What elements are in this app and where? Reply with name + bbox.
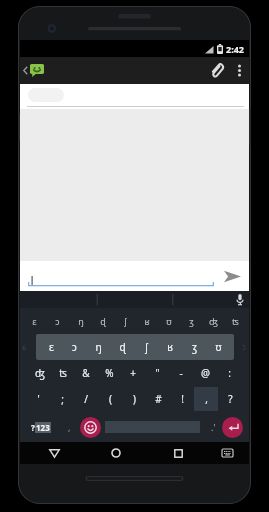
staticText: : — [228, 366, 231, 380]
button[interactable]: ? — [24, 412, 58, 442]
staticText: 123 — [36, 422, 50, 433]
staticText: ) — [133, 392, 136, 406]
staticText: ɔ — [55, 315, 60, 327]
staticText: ʒ — [192, 340, 197, 354]
button[interactable]: ɛ — [40, 334, 63, 360]
button[interactable]: # — [146, 386, 170, 412]
staticText: ʃ — [145, 340, 148, 354]
button[interactable]: Recipient — [28, 88, 64, 102]
staticText: ʁ — [144, 315, 150, 327]
button[interactable]: ŋ — [86, 334, 110, 360]
button[interactable]: Recent apps — [167, 442, 189, 464]
staticText: ɔ — [242, 341, 246, 352]
staticText: % — [105, 366, 114, 380]
button[interactable]: ʊ — [206, 334, 230, 360]
staticText: # — [155, 392, 162, 406]
staticText: 2:42 — [226, 43, 244, 55]
button[interactable]: ? — [218, 386, 242, 412]
button[interactable]: Hide keyboard — [217, 443, 237, 463]
staticText: ɛ — [49, 340, 54, 354]
button[interactable]: ʦ — [224, 308, 246, 333]
staticText: ʦ — [232, 315, 239, 327]
button[interactable]: " — [145, 360, 169, 386]
button[interactable]: Emoji — [80, 417, 101, 438]
button[interactable]: Enter — [222, 417, 243, 438]
staticText: ʃ — [124, 315, 127, 327]
staticText: - — [179, 366, 183, 380]
button[interactable]: Attach — [203, 57, 229, 84]
staticText: , — [205, 392, 208, 406]
staticText: ɔ — [72, 340, 77, 354]
button[interactable]: Navigate up — [20, 57, 48, 84]
button[interactable]: ʤ — [28, 360, 51, 386]
staticText: ! — [181, 392, 184, 406]
staticText: ʒ — [189, 315, 194, 327]
button[interactable]: & — [74, 360, 97, 386]
button[interactable]: ʒ — [182, 334, 206, 360]
button[interactable]: Back — [43, 442, 65, 464]
button[interactable]: ɛ — [23, 308, 46, 333]
button[interactable]: Voice input — [231, 291, 249, 308]
staticText: ɖ — [119, 340, 126, 354]
button[interactable]: ʁ — [136, 308, 158, 333]
button[interactable]: Home — [105, 442, 127, 464]
button[interactable]: % — [97, 360, 121, 386]
button[interactable]: .' — [204, 412, 222, 442]
staticText: ( — [109, 392, 112, 406]
staticText: ʦ — [59, 366, 67, 380]
staticText: ʤ — [209, 315, 218, 327]
button[interactable]: ɖ — [110, 334, 134, 360]
button[interactable]: , — [58, 412, 80, 442]
staticText: @ — [201, 366, 210, 380]
staticText: / — [84, 392, 88, 406]
staticText: + — [130, 366, 136, 380]
button[interactable]: ɖ — [92, 308, 114, 333]
button[interactable]: ɔ — [46, 308, 69, 333]
staticText: ʤ — [35, 366, 45, 380]
button[interactable]: Send — [220, 264, 244, 288]
button[interactable]: + — [121, 360, 145, 386]
button[interactable]: ŋ — [69, 308, 92, 333]
button[interactable] — [28, 261, 214, 291]
button[interactable]: ʒ — [180, 308, 202, 333]
button[interactable]: ) — [122, 386, 146, 412]
button[interactable]: More options — [229, 57, 249, 84]
staticText: " — [155, 366, 160, 380]
button[interactable]: ʁ — [158, 334, 182, 360]
staticText: ɛ — [32, 315, 37, 327]
staticText: ? — [228, 392, 233, 406]
button[interactable]: ʊ — [158, 308, 180, 333]
staticText: ʊ — [166, 315, 172, 327]
staticText: & — [82, 366, 90, 380]
staticText: ʊ — [215, 340, 222, 354]
button[interactable]: / — [74, 386, 98, 412]
button[interactable]: ʤ — [202, 308, 224, 333]
staticText: ; — [61, 392, 64, 406]
staticText: ? — [31, 422, 35, 433]
button[interactable]: , — [194, 387, 218, 411]
button[interactable]: ɔ — [63, 334, 86, 360]
button[interactable]: ; — [50, 386, 74, 412]
button[interactable]: @ — [193, 360, 217, 386]
button[interactable]: - — [169, 360, 193, 386]
staticText: ʁ — [167, 340, 173, 354]
button[interactable]: ʃ — [114, 308, 136, 333]
button[interactable]: ' — [27, 386, 50, 412]
button[interactable]: ! — [170, 386, 194, 412]
button[interactable]: ʃ — [134, 334, 158, 360]
staticText: ŋ — [95, 340, 102, 354]
staticText: ɕ — [22, 341, 27, 352]
staticText: , — [68, 421, 71, 433]
staticText: .' — [211, 421, 216, 433]
staticText: ' — [37, 392, 40, 406]
button[interactable]: ( — [98, 386, 122, 412]
button[interactable]: : — [217, 360, 241, 386]
staticText: ŋ — [78, 315, 84, 327]
button[interactable]: ʦ — [51, 360, 74, 386]
staticText: ɖ — [100, 315, 106, 327]
